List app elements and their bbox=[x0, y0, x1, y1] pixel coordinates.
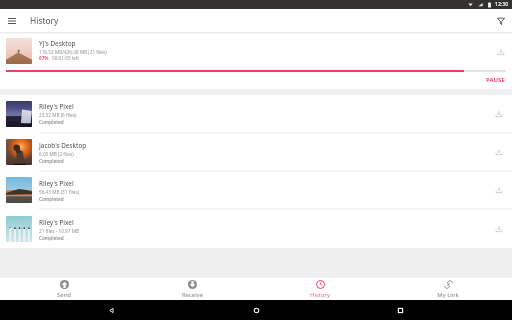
staticText: Riley's Pixel bbox=[39, 102, 74, 111]
staticText: Receive bbox=[182, 291, 203, 299]
staticText: History bbox=[310, 291, 330, 299]
staticText: 67% bbox=[39, 55, 49, 61]
button[interactable]: Filter bbox=[493, 13, 508, 28]
button[interactable]: History bbox=[256, 278, 384, 300]
staticText: My Link bbox=[437, 291, 459, 299]
staticText: Completed bbox=[39, 119, 64, 125]
button[interactable]: Download bbox=[490, 105, 508, 123]
button[interactable]: Recent apps bbox=[393, 303, 407, 317]
staticText: 00:01:05 left bbox=[52, 55, 79, 61]
button[interactable]: PAUSE bbox=[486, 76, 505, 84]
staticText: 116.52 MB/426.08 MB (21 files) bbox=[39, 49, 107, 55]
staticText: History bbox=[30, 15, 59, 26]
button[interactable]: Download bbox=[490, 143, 508, 161]
staticText: Riley's Pixel bbox=[39, 218, 74, 227]
staticText: Completed bbox=[39, 158, 64, 164]
staticText: Completed bbox=[39, 196, 64, 202]
button[interactable]: Download bbox=[490, 220, 508, 238]
staticText: YJ's Desktop bbox=[39, 39, 76, 48]
button[interactable]: Riley's Pixel bbox=[0, 95, 512, 132]
staticText: Riley's Pixel bbox=[39, 179, 74, 188]
staticText: 23.52 MB (6 files) bbox=[39, 112, 77, 118]
button[interactable]: Jacob's Desktop bbox=[0, 134, 512, 170]
staticText: PAUSE bbox=[486, 76, 505, 84]
button[interactable]: Riley's Pixel bbox=[0, 210, 512, 248]
staticText: 21 files - 10.97 MB bbox=[39, 228, 79, 234]
button[interactable]: Open navigation menu bbox=[4, 13, 19, 28]
staticText: Send bbox=[57, 291, 71, 299]
button[interactable]: Send bbox=[0, 278, 128, 300]
staticText: Completed bbox=[39, 235, 64, 241]
staticText: 6.05 MB (2 files) bbox=[39, 151, 74, 157]
button[interactable]: Back bbox=[104, 303, 118, 317]
staticText: 56.43 MB (31 files) bbox=[39, 189, 80, 195]
button[interactable]: Home bbox=[249, 303, 263, 317]
button[interactable]: Riley's Pixel bbox=[0, 172, 512, 208]
staticText: 12:30 bbox=[495, 1, 509, 8]
button[interactable]: Download bbox=[494, 45, 508, 59]
button[interactable]: Receive bbox=[128, 278, 256, 300]
button[interactable]: My Link bbox=[384, 278, 512, 300]
button[interactable]: YJ's Desktop bbox=[0, 34, 512, 89]
button[interactable]: Download bbox=[490, 181, 508, 199]
staticText: Jacob's Desktop bbox=[39, 141, 87, 150]
